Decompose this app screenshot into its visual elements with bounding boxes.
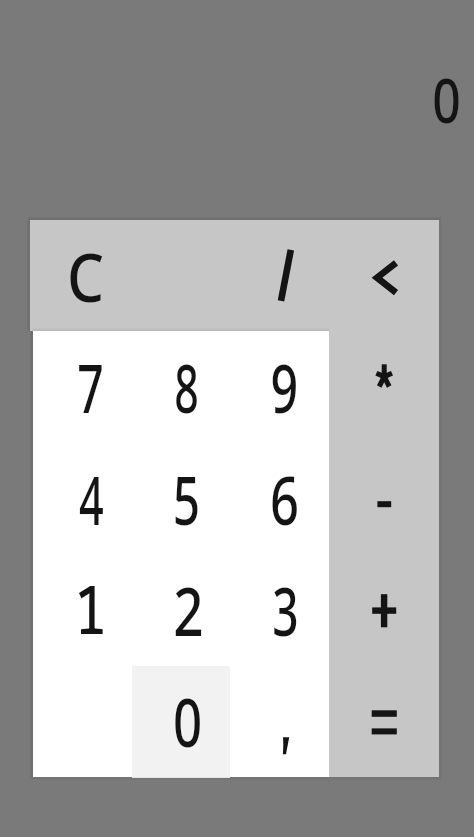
button[interactable]: 6 bbox=[230, 443, 329, 554]
button[interactable] bbox=[329, 331, 439, 442]
staticText: 4 bbox=[79, 452, 104, 545]
button[interactable]: 2 bbox=[132, 554, 231, 665]
button[interactable] bbox=[230, 220, 329, 331]
staticText: 0 bbox=[432, 58, 461, 141]
staticText: 3 bbox=[272, 563, 299, 656]
staticText: 9 bbox=[271, 340, 298, 433]
button[interactable] bbox=[329, 554, 439, 665]
button[interactable]: 9 bbox=[230, 331, 329, 442]
staticText: 1 bbox=[74, 561, 107, 654]
staticText: 2 bbox=[173, 563, 204, 656]
button[interactable]: C bbox=[33, 220, 132, 331]
button[interactable]: 1 bbox=[33, 554, 132, 665]
button[interactable]: 3 bbox=[230, 554, 329, 665]
staticText: C bbox=[67, 229, 105, 322]
button[interactable]: 5 bbox=[132, 443, 231, 554]
staticText: 0 bbox=[173, 674, 202, 767]
staticText: 5 bbox=[173, 452, 200, 545]
button[interactable]: 7 bbox=[33, 331, 132, 442]
button[interactable] bbox=[329, 666, 439, 778]
button[interactable]: 4 bbox=[33, 443, 132, 554]
staticText: 8 bbox=[174, 340, 199, 433]
staticText: 6 bbox=[270, 452, 299, 545]
button[interactable] bbox=[329, 443, 439, 554]
button[interactable]: 8 bbox=[132, 331, 231, 442]
button[interactable]: 0 bbox=[132, 666, 231, 778]
button[interactable] bbox=[329, 220, 439, 331]
staticText: 7 bbox=[77, 340, 104, 433]
button[interactable] bbox=[230, 666, 329, 778]
button[interactable] bbox=[33, 666, 132, 778]
